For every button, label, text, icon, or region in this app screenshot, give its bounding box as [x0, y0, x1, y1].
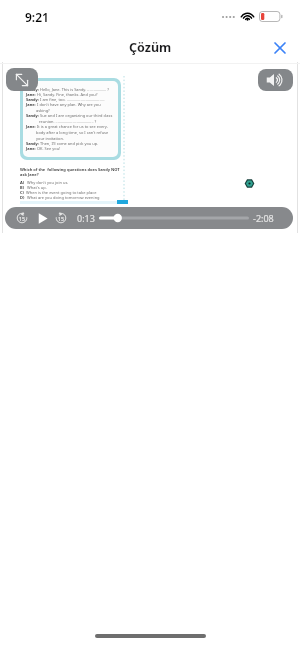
- staticText: -2:08: [253, 212, 274, 224]
- staticText: Sandy:: [26, 97, 39, 102]
- staticText: It is a great chance for us to see every…: [36, 124, 115, 141]
- staticText: Sue and I are organizing our third class…: [39, 113, 115, 124]
- staticText: C): [20, 190, 24, 195]
- staticText: B): [20, 185, 25, 190]
- staticText: Then, I'll come and pick you up.: [39, 141, 99, 146]
- staticText: When is the event going to take place: [26, 190, 97, 195]
- button[interactable]: Fullscreen: [6, 68, 38, 91]
- staticText: Sandy:: [26, 141, 39, 146]
- button[interactable]: Play: [33, 209, 51, 227]
- staticText: A): [20, 180, 25, 185]
- staticText: Jane:: [26, 124, 36, 129]
- staticText: Jane:: [26, 102, 36, 107]
- staticText: I don't have any plan. Why are you askin…: [36, 102, 115, 113]
- staticText: Hi, Sandy. Fine, thanks. And you?: [36, 92, 98, 97]
- staticText: 9:21: [25, 9, 49, 25]
- staticText: Sandy:: [26, 87, 39, 92]
- staticText: Jane:: [26, 92, 36, 97]
- button[interactable]: Forward 15 seconds: [52, 209, 70, 227]
- staticText: Hello, Jane. This is Sandy. ............…: [39, 87, 110, 92]
- button[interactable]: Close: [269, 37, 291, 59]
- staticText: OK. See you!: [36, 146, 61, 151]
- staticText: D): [20, 195, 25, 200]
- button[interactable]: Rewind 15 seconds: [13, 209, 31, 227]
- staticText: Which of the following questions does Sa…: [20, 167, 121, 178]
- staticText: What are you doing tomorrow evening: [27, 195, 100, 200]
- staticText: Why don't you join us.: [27, 180, 69, 185]
- staticText: What's up.: [27, 185, 47, 190]
- staticText: Sandy:: [26, 113, 39, 118]
- button[interactable]: Volume: [258, 69, 293, 91]
- staticText: Jane:: [26, 146, 36, 151]
- staticText: 0:13: [77, 212, 95, 224]
- staticText: I am fine, too. ........................…: [39, 97, 105, 102]
- staticText: 15: [19, 215, 25, 222]
- staticText: Çözüm: [129, 39, 172, 56]
- staticText: 15: [58, 215, 64, 222]
